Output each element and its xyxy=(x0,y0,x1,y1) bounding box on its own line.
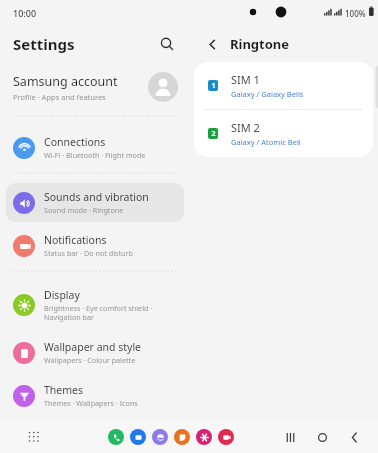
staticText: Settings xyxy=(13,34,75,54)
button[interactable]: 1 xyxy=(194,62,373,109)
staticText: Sound mode · Ringtone xyxy=(44,205,124,215)
button[interactable]: Apps xyxy=(24,427,44,447)
button[interactable]: App xyxy=(218,429,234,445)
button[interactable]: App xyxy=(130,429,146,445)
button[interactable]: Themes xyxy=(6,376,184,415)
button[interactable]: Back xyxy=(344,427,364,447)
staticText: Wi-Fi · Bluetooth · Flight mode xyxy=(44,150,146,160)
button[interactable]: App xyxy=(152,429,168,445)
staticText: Status bar · Do not disturb xyxy=(44,248,133,258)
staticText: Brightness · Eye comfort shield · Naviga… xyxy=(44,303,153,322)
button[interactable]: Sounds and vibration xyxy=(6,183,184,222)
button[interactable]: Home xyxy=(312,427,332,447)
staticText: Samsung account xyxy=(13,73,118,90)
staticText: Profile · Apps and features xyxy=(13,92,106,102)
staticText: SIM 1 xyxy=(231,72,260,87)
staticText: Sounds and vibration xyxy=(44,190,149,204)
staticText: Notifications xyxy=(44,233,107,247)
staticText: Ringtone xyxy=(230,35,290,53)
staticText: Galaxy / Galaxy Bells xyxy=(231,89,304,99)
button[interactable]: Notifications xyxy=(6,226,184,265)
staticText: SIM 2 xyxy=(231,120,260,135)
staticText: Connections xyxy=(44,135,106,149)
button[interactable]: Wallpaper and style xyxy=(6,333,184,372)
button[interactable]: 2 xyxy=(194,110,373,157)
staticText: Display xyxy=(44,288,80,302)
button[interactable]: Search xyxy=(154,31,180,57)
button[interactable]: Connections xyxy=(6,128,184,167)
staticText: Wallpaper and style xyxy=(44,340,142,354)
button[interactable]: Samsung account xyxy=(0,62,190,112)
staticText: Wallpapers · Colour palette xyxy=(44,355,136,365)
button[interactable]: Recents xyxy=(280,427,300,447)
button[interactable]: Display xyxy=(6,281,184,329)
staticText: Themes · Wallpapers · Icons xyxy=(44,398,138,408)
staticText: 100% xyxy=(345,8,366,19)
button[interactable]: Back xyxy=(201,33,223,55)
button[interactable]: App xyxy=(196,429,212,445)
staticText: Themes xyxy=(44,383,84,397)
staticText: 1 xyxy=(211,81,216,91)
button[interactable]: App xyxy=(108,429,124,445)
button[interactable]: App xyxy=(174,429,190,445)
staticText: 10:00 xyxy=(13,7,37,19)
staticText: 2 xyxy=(211,129,216,139)
staticText: Galaxy / Atomic Bell xyxy=(231,137,301,147)
